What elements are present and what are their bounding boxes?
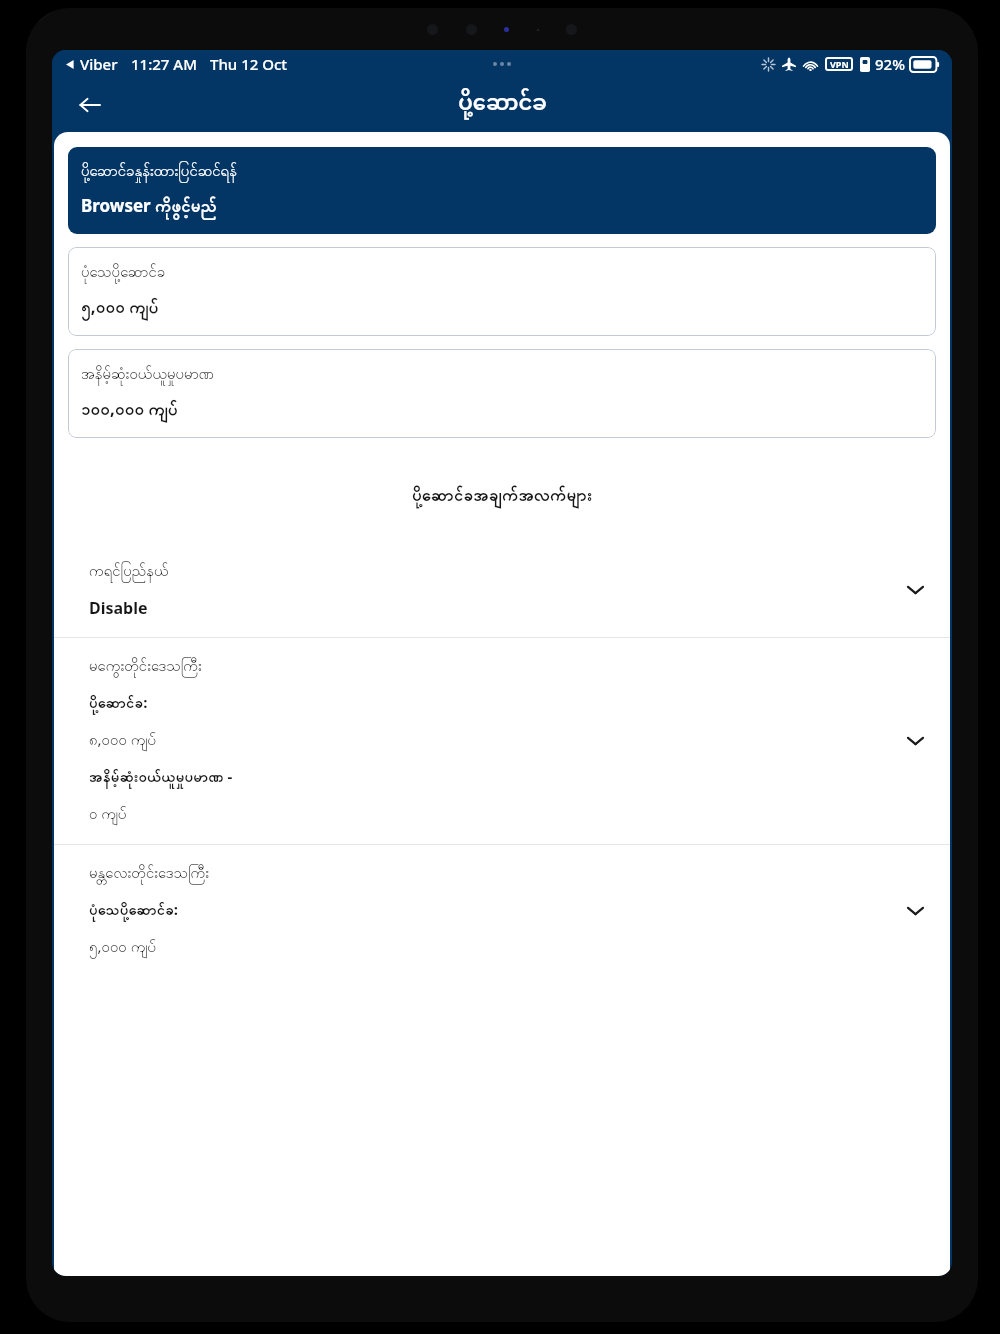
staticText: အနိမ့်ဆုံးဝယ်ယူမှုပမာဏ - <box>89 766 233 789</box>
other: Expand <box>902 898 928 924</box>
staticText: ပုံသေပို့ဆောင်ခ: <box>89 899 179 922</box>
staticText: Thu 12 Oct <box>210 54 288 74</box>
staticText: ပို့ဆောင်ခ <box>458 82 547 128</box>
staticText: 92% <box>875 54 905 74</box>
staticText: ၁၀၀,၀၀၀ ကျပ် <box>81 397 178 423</box>
staticText: ၅,၀၀၀ ကျပ် <box>81 295 159 321</box>
button[interactable]: ပုံသေပို့ဆောင်ခ <box>68 247 936 336</box>
staticText: မကွေးတိုင်းဒေသကြီး <box>89 656 202 678</box>
staticText: ပုံသေပို့ဆောင်ခ <box>81 262 166 284</box>
staticText: Disable <box>89 597 148 619</box>
other: Expand <box>902 577 928 603</box>
staticText: 11:27 AM <box>131 54 197 74</box>
staticText: Browser ကိုဖွင့်မည် <box>81 194 217 220</box>
staticText: မန္တလေးတိုင်းဒေသကြီး <box>89 863 209 885</box>
staticText: ပို့ဆောင်ခနှုန်းထားပြင်ဆင်ရန် <box>81 161 237 183</box>
button[interactable]: Back <box>68 83 112 127</box>
staticText: ပို့ဆောင်ခ: <box>89 692 148 715</box>
staticText: အနိမ့်ဆုံးဝယ်ယူမှုပမာဏ <box>81 364 214 386</box>
button[interactable]: ပို့ဆောင်ခနှုန်းထားပြင်ဆင်ရန် <box>68 147 936 234</box>
other: Expand <box>902 728 928 754</box>
button[interactable]: အနိမ့်ဆုံးဝယ်ယူမှုပမာဏ <box>68 349 936 438</box>
staticText: ပို့ဆောင်ခအချက်အလက်များ <box>54 484 950 509</box>
staticText: ၀ ကျပ် <box>89 803 127 826</box>
button[interactable]: မကွေးတိုင်းဒေသကြီး <box>54 638 950 844</box>
staticText: ၅,၀၀၀ ကျပ် <box>89 936 156 959</box>
staticText: ၈,၀၀၀ ကျပ် <box>89 729 156 752</box>
staticText: VPN <box>830 58 849 70</box>
staticText: Viber <box>80 54 118 74</box>
button[interactable]: မန္တလေးတိုင်းဒေသကြီး <box>54 845 950 977</box>
staticText: ကရင်ပြည်နယ် <box>89 561 169 583</box>
button[interactable]: ကရင်ပြည်နယ် <box>54 543 950 637</box>
